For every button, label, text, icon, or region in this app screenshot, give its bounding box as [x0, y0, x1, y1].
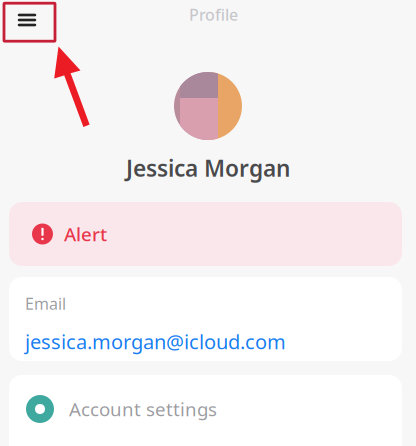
button[interactable]: jessica.morgan@icloud.com	[25, 328, 286, 355]
staticText: jessica.morgan@icloud.com	[25, 328, 286, 355]
button[interactable]: Menu	[0, 0, 54, 40]
staticText: Jessica Morgan	[126, 153, 290, 183]
button[interactable]: Alert	[9, 202, 402, 266]
button[interactable]: Account settings	[9, 375, 402, 446]
staticText: Account settings	[69, 397, 217, 421]
staticText: Email	[25, 293, 66, 314]
staticText: Profile	[189, 4, 238, 25]
staticText: Alert	[64, 222, 107, 246]
